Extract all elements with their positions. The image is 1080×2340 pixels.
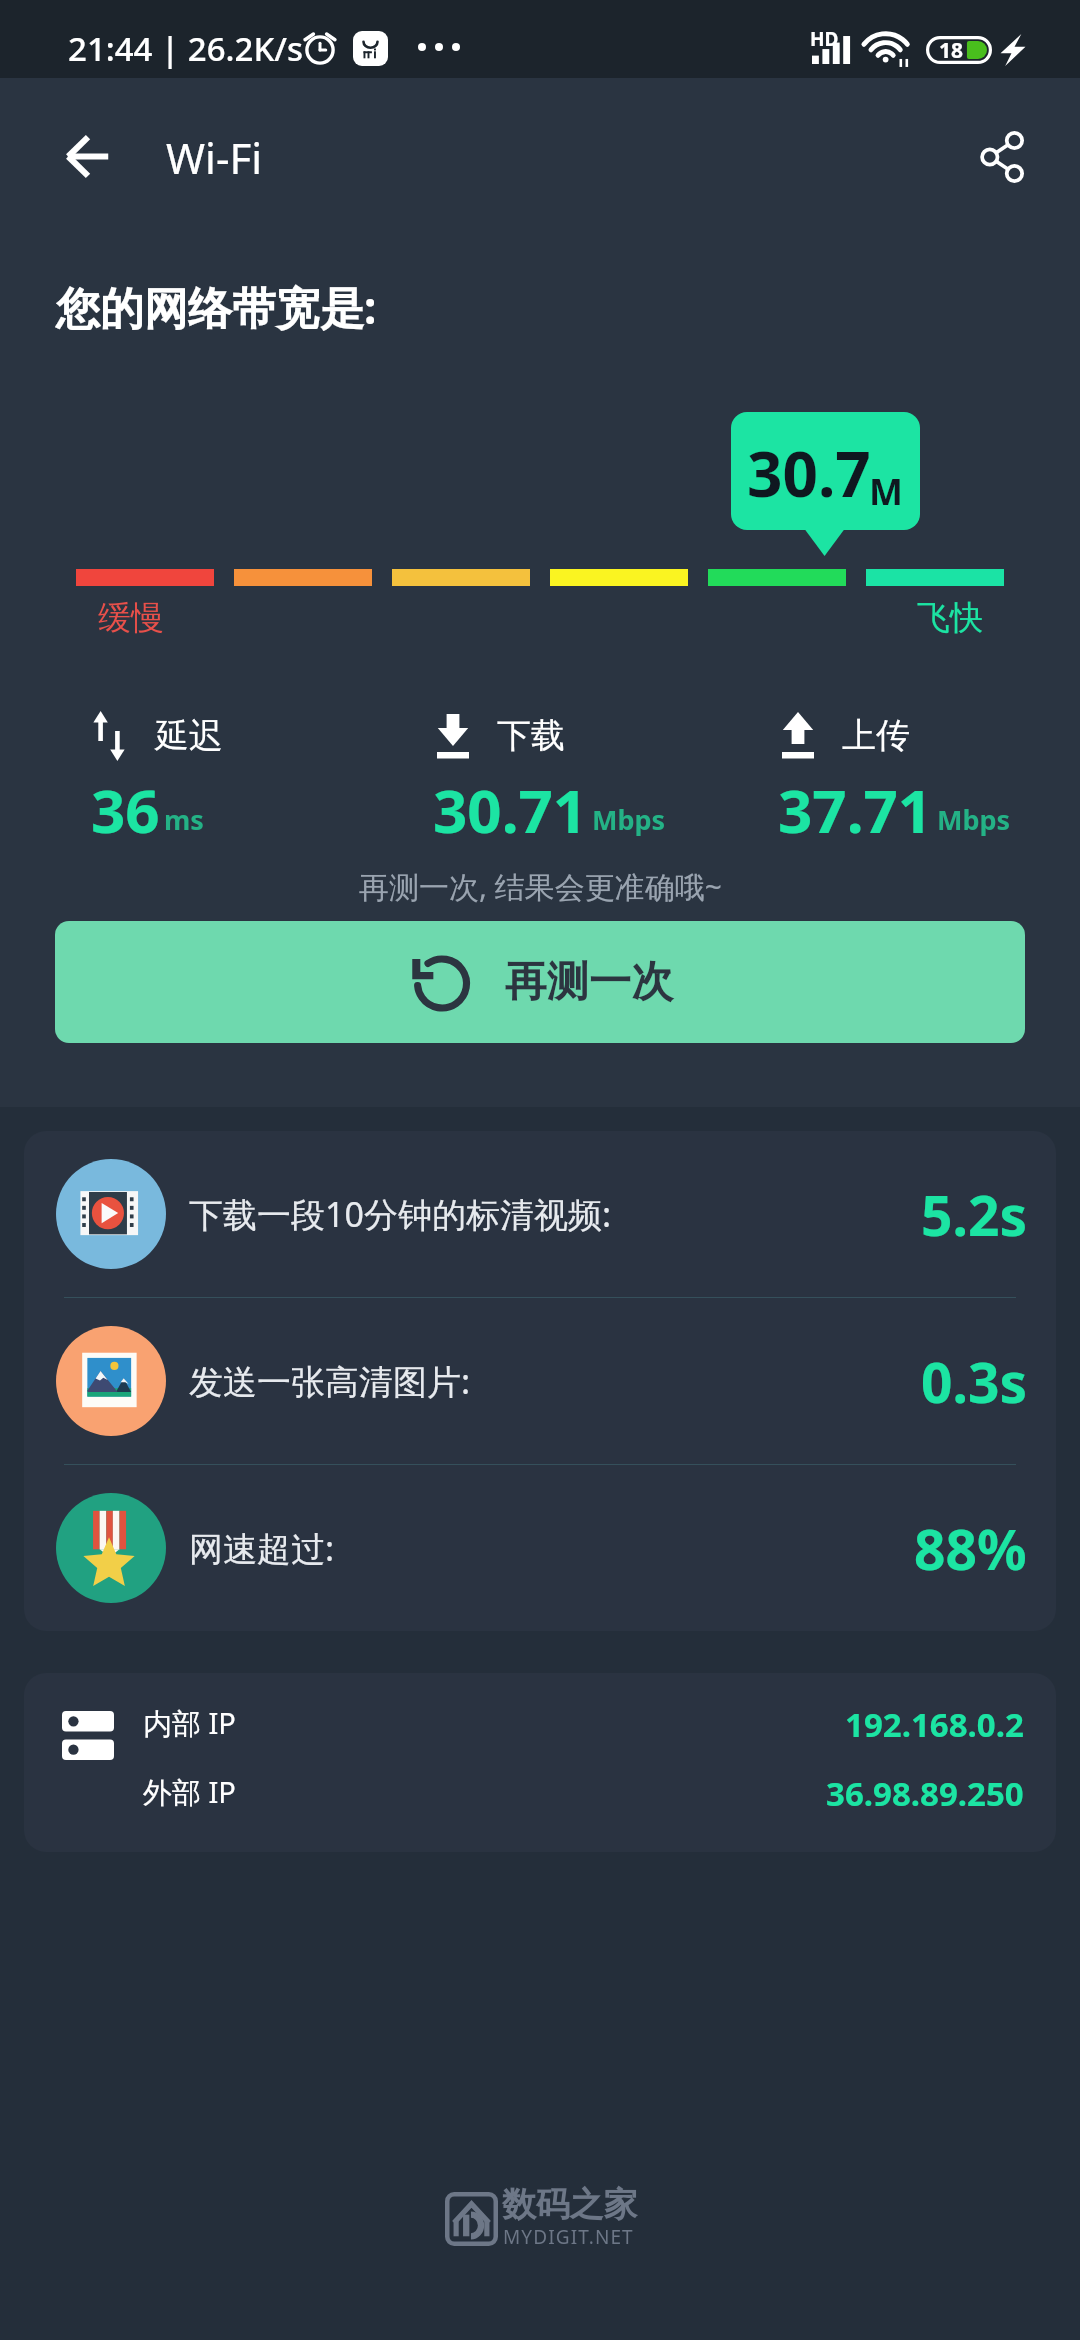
staticText: 数码之家: [502, 2183, 638, 2226]
staticText: 网速超过:: [189, 1525, 335, 1571]
button[interactable]: 发送一张高清图片:: [24, 1298, 1056, 1464]
staticText: 内部 IP: [143, 1703, 236, 1743]
staticText: MYDIGIT.NET: [503, 2224, 634, 2250]
staticText: 18: [939, 36, 964, 64]
staticText: 88%: [914, 1511, 1027, 1586]
staticText: 37.71: [778, 769, 933, 851]
staticText: 30.7: [747, 431, 871, 515]
staticText: 再测一次: [505, 956, 673, 1009]
staticText: 下载: [497, 714, 565, 757]
button[interactable]: 网速超过:: [24, 1465, 1056, 1631]
staticText: HD: [810, 26, 839, 52]
staticText: 上传: [842, 714, 910, 757]
staticText: Mbps: [592, 801, 666, 838]
staticText: Mbps: [937, 801, 1011, 838]
staticText: 21:44 | 26.2K/s: [68, 26, 304, 71]
staticText: 36.98.89.250: [826, 1771, 1024, 1816]
staticText: 5.2s: [921, 1177, 1027, 1252]
button[interactable]: Back: [56, 124, 120, 188]
staticText: 延迟: [155, 714, 223, 757]
staticText: 发送一张高清图片:: [189, 1358, 471, 1404]
staticText: 飞快: [917, 597, 983, 639]
staticText: 下载一段10分钟的标清视频:: [189, 1191, 612, 1237]
staticText: 外部 IP: [143, 1772, 236, 1812]
staticText: ms: [164, 801, 204, 838]
staticText: 36: [91, 769, 160, 851]
button[interactable]: 下载一段10分钟的标清视频:: [24, 1131, 1056, 1297]
button[interactable]: 再测一次: [55, 921, 1025, 1043]
staticText: 30.71: [433, 769, 588, 851]
staticText: 0.3s: [921, 1344, 1027, 1419]
button[interactable]: Share: [962, 116, 1044, 198]
staticText: M: [869, 467, 903, 516]
staticText: 再测一次, 结果会更准确哦~: [359, 866, 722, 907]
staticText: 缓慢: [98, 597, 164, 639]
staticText: Wi-Fi: [166, 129, 263, 186]
staticText: 您的网络带宽是:: [56, 277, 377, 337]
staticText: 192.168.0.2: [845, 1702, 1024, 1747]
